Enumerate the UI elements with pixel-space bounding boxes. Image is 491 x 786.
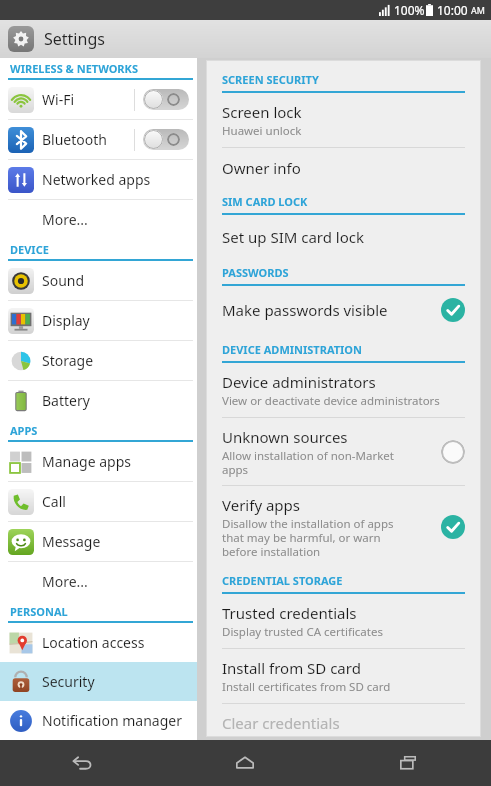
staticText: AM xyxy=(471,4,485,16)
staticText: 10:00 xyxy=(437,2,471,18)
button[interactable]: Security xyxy=(0,662,197,701)
staticText: Allow installation of non-Market apps xyxy=(222,448,394,477)
staticText: Location access xyxy=(42,633,189,652)
button[interactable]: Message xyxy=(0,522,197,561)
staticText: More... xyxy=(42,572,189,591)
button[interactable] xyxy=(143,129,189,150)
button[interactable]: Call xyxy=(0,482,197,521)
staticText: Storage xyxy=(42,351,189,370)
staticText: Set up SIM card lock xyxy=(222,227,365,247)
staticText: SIM CARD LOCK xyxy=(222,194,308,209)
staticText: Disallow the installation of apps that m… xyxy=(222,516,394,559)
button[interactable]: Unknown sources xyxy=(222,418,465,485)
staticText: Verify apps xyxy=(222,495,300,515)
button[interactable]: Back xyxy=(0,740,163,786)
other: Enabled xyxy=(441,515,465,539)
staticText: Install from SD card xyxy=(222,658,361,678)
button[interactable]: Owner info xyxy=(222,148,465,186)
button[interactable]: Sound xyxy=(0,261,197,300)
button[interactable]: Clear credentials xyxy=(222,704,465,737)
staticText: Manage apps xyxy=(42,452,189,471)
staticText: Owner info xyxy=(222,158,301,178)
staticText: Notification manager xyxy=(42,711,189,730)
other: Enabled xyxy=(441,298,465,322)
staticText: WIRELESS & NETWORKS xyxy=(10,61,138,76)
staticText: PERSONAL xyxy=(10,604,68,619)
button[interactable]: Home xyxy=(163,740,327,786)
button[interactable]: Install from SD card xyxy=(222,649,465,703)
staticText: Huawei unlock xyxy=(222,123,302,139)
staticText: Security xyxy=(42,672,189,691)
staticText: Wi-Fi xyxy=(42,90,134,109)
staticText: DEVICE xyxy=(10,242,49,257)
button[interactable]: Storage xyxy=(0,341,197,380)
staticText: SCREEN SECURITY xyxy=(222,72,319,87)
staticText: More... xyxy=(42,210,189,229)
button[interactable]: Networked apps xyxy=(0,160,197,199)
staticText: Settings xyxy=(44,28,105,50)
staticText: Bluetooth xyxy=(42,130,134,149)
staticText: Unknown sources xyxy=(222,427,348,447)
button[interactable]: More... xyxy=(0,200,197,239)
staticText: Screen lock xyxy=(222,102,302,122)
staticText: CREDENTIAL STORAGE xyxy=(222,573,343,588)
button[interactable]: Location access xyxy=(0,623,197,662)
button[interactable]: Set up SIM card lock xyxy=(222,215,465,255)
staticText: Device administrators xyxy=(222,372,376,392)
button[interactable]: Trusted credentials xyxy=(222,594,465,648)
staticText: Sound xyxy=(42,271,189,290)
other: Disabled xyxy=(441,440,465,464)
button[interactable] xyxy=(143,89,189,110)
button[interactable]: Notification manager xyxy=(0,701,197,740)
button[interactable]: Screen lock xyxy=(222,93,465,147)
staticText: APPS xyxy=(10,423,38,438)
button[interactable]: Recents xyxy=(327,740,491,786)
staticText: Message xyxy=(42,532,189,551)
staticText: View or deactivate device administrators xyxy=(222,393,440,409)
staticText: Battery xyxy=(42,391,189,410)
staticText: DEVICE ADMINISTRATION xyxy=(222,342,362,357)
staticText: 100% xyxy=(394,2,425,18)
button[interactable]: Verify apps xyxy=(222,486,465,567)
button[interactable]: Wi-Fi xyxy=(0,80,197,119)
staticText: Call xyxy=(42,492,189,511)
button[interactable]: Bluetooth xyxy=(0,120,197,159)
staticText: Trusted credentials xyxy=(222,603,357,623)
staticText: Install certificates from SD card xyxy=(222,679,391,695)
button[interactable]: Make passwords visible xyxy=(222,286,465,330)
staticText: Clear credentials xyxy=(222,713,340,729)
button[interactable]: Device administrators xyxy=(222,363,465,417)
staticText: Networked apps xyxy=(42,170,189,189)
button[interactable]: Battery xyxy=(0,381,197,420)
staticText: Display xyxy=(42,311,189,330)
staticText: Display trusted CA certificates xyxy=(222,624,383,640)
button[interactable]: More... xyxy=(0,562,197,601)
button[interactable]: Display xyxy=(0,301,197,340)
button[interactable]: Manage apps xyxy=(0,442,197,481)
staticText: PASSWORDS xyxy=(222,265,289,280)
staticText: Make passwords visible xyxy=(222,300,388,320)
